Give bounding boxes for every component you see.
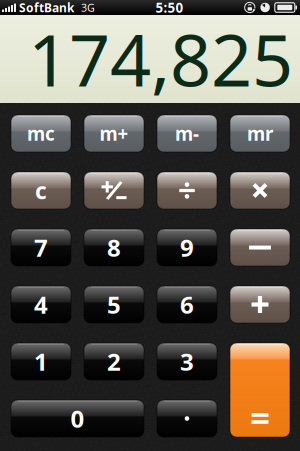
button[interactable]: mc bbox=[11, 115, 71, 152]
staticText: 3G bbox=[81, 0, 95, 15]
staticText: mc bbox=[27, 121, 55, 146]
staticText: 6 bbox=[180, 289, 194, 320]
staticText: 7 bbox=[34, 232, 48, 263]
button[interactable]: 9 bbox=[157, 229, 217, 266]
staticText: SoftBank bbox=[19, 0, 74, 15]
staticText: 1 bbox=[34, 346, 48, 377]
button[interactable]: Minus bbox=[230, 229, 290, 266]
button[interactable]: Multiply bbox=[230, 172, 290, 209]
staticText: 174,825 bbox=[28, 11, 293, 106]
staticText: 3 bbox=[180, 346, 194, 377]
button[interactable]: 1 bbox=[11, 343, 71, 380]
button[interactable]: 8 bbox=[84, 229, 144, 266]
staticText: 5:50 bbox=[156, 0, 184, 16]
button[interactable]: Plus minus bbox=[84, 172, 144, 209]
staticText: m- bbox=[175, 121, 199, 146]
button[interactable]: 2 bbox=[84, 343, 144, 380]
staticText: 2 bbox=[107, 346, 121, 377]
button[interactable]: 0 bbox=[11, 400, 144, 437]
staticText: 8 bbox=[107, 232, 121, 263]
button[interactable]: c bbox=[11, 172, 71, 209]
staticText: mr bbox=[247, 121, 273, 146]
button[interactable]: Plus bbox=[230, 286, 290, 323]
button[interactable]: Equals bbox=[230, 343, 290, 437]
button[interactable]: 3 bbox=[157, 343, 217, 380]
staticText: 5 bbox=[107, 289, 121, 320]
button[interactable]: m+ bbox=[84, 115, 144, 152]
button[interactable]: Divide bbox=[157, 172, 217, 209]
button[interactable]: 5 bbox=[84, 286, 144, 323]
staticText: 9 bbox=[180, 232, 194, 263]
button[interactable]: Decimal point bbox=[157, 400, 217, 437]
button[interactable]: 7 bbox=[11, 229, 71, 266]
button[interactable]: 6 bbox=[157, 286, 217, 323]
staticText: c bbox=[35, 175, 47, 205]
button[interactable]: mr bbox=[230, 115, 290, 152]
staticText: 4 bbox=[34, 289, 48, 320]
button[interactable]: m- bbox=[157, 115, 217, 152]
button[interactable]: 4 bbox=[11, 286, 71, 323]
staticText: m+ bbox=[99, 121, 128, 146]
staticText: 0 bbox=[70, 403, 84, 434]
